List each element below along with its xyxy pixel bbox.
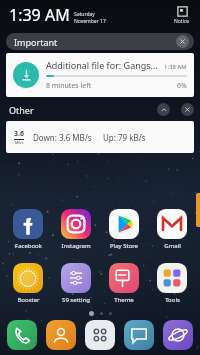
button[interactable]: Contacts xyxy=(46,320,76,350)
button[interactable]: S9 setting xyxy=(52,262,100,305)
staticText: 8 minutes left xyxy=(46,81,177,91)
button[interactable]: Dismiss important notifications xyxy=(176,35,189,48)
staticText: 1:39 AM xyxy=(9,4,70,26)
button[interactable]: Play Store xyxy=(100,208,148,251)
staticText: Gmail xyxy=(164,242,181,250)
staticText: Tools xyxy=(165,296,180,304)
button[interactable]: Gmail xyxy=(148,208,196,251)
staticText: Up: 79 kB/s xyxy=(103,132,146,143)
staticText: Additional file for: Gangstar V.. xyxy=(46,59,160,71)
staticText: Notice xyxy=(174,18,190,25)
button[interactable]: Phone xyxy=(7,320,37,350)
staticText: 3.6 xyxy=(14,129,24,139)
button[interactable]: Collapse other notifications xyxy=(157,103,170,116)
button[interactable]: Dismiss other notifications xyxy=(181,103,194,116)
button[interactable]: Notice xyxy=(174,6,190,25)
staticText: Instagram xyxy=(61,242,91,250)
staticText: Theme xyxy=(114,296,134,304)
button[interactable]: Edge panel handle xyxy=(196,193,200,227)
staticText: Facebook xyxy=(15,242,42,250)
staticText: Other xyxy=(9,104,34,116)
button[interactable]: Theme xyxy=(100,262,148,305)
staticText: 6% xyxy=(177,81,187,91)
staticText: Down: 3.6 MB/s xyxy=(33,132,92,143)
button[interactable]: Internet xyxy=(163,320,193,350)
staticText: Booster xyxy=(17,296,40,304)
staticText: S9 setting xyxy=(62,296,90,304)
button[interactable]: 3.6 xyxy=(6,121,194,153)
button[interactable]: Messages xyxy=(124,320,154,350)
button[interactable]: Facebook xyxy=(4,208,52,251)
staticText: MB/s xyxy=(15,140,24,145)
staticText: Play Store xyxy=(110,242,138,250)
button[interactable]: Booster xyxy=(4,262,52,305)
button[interactable]: Additional file for: Gangstar V.. xyxy=(6,53,194,97)
button[interactable]: Instagram xyxy=(52,208,100,251)
button[interactable]: Apps xyxy=(85,320,115,350)
staticText: November 17 xyxy=(74,18,106,25)
staticText: 1:38 AM xyxy=(164,63,187,71)
button[interactable]: Tools xyxy=(148,262,196,305)
staticText: Saturday xyxy=(74,11,95,18)
staticText: Important xyxy=(14,36,58,48)
